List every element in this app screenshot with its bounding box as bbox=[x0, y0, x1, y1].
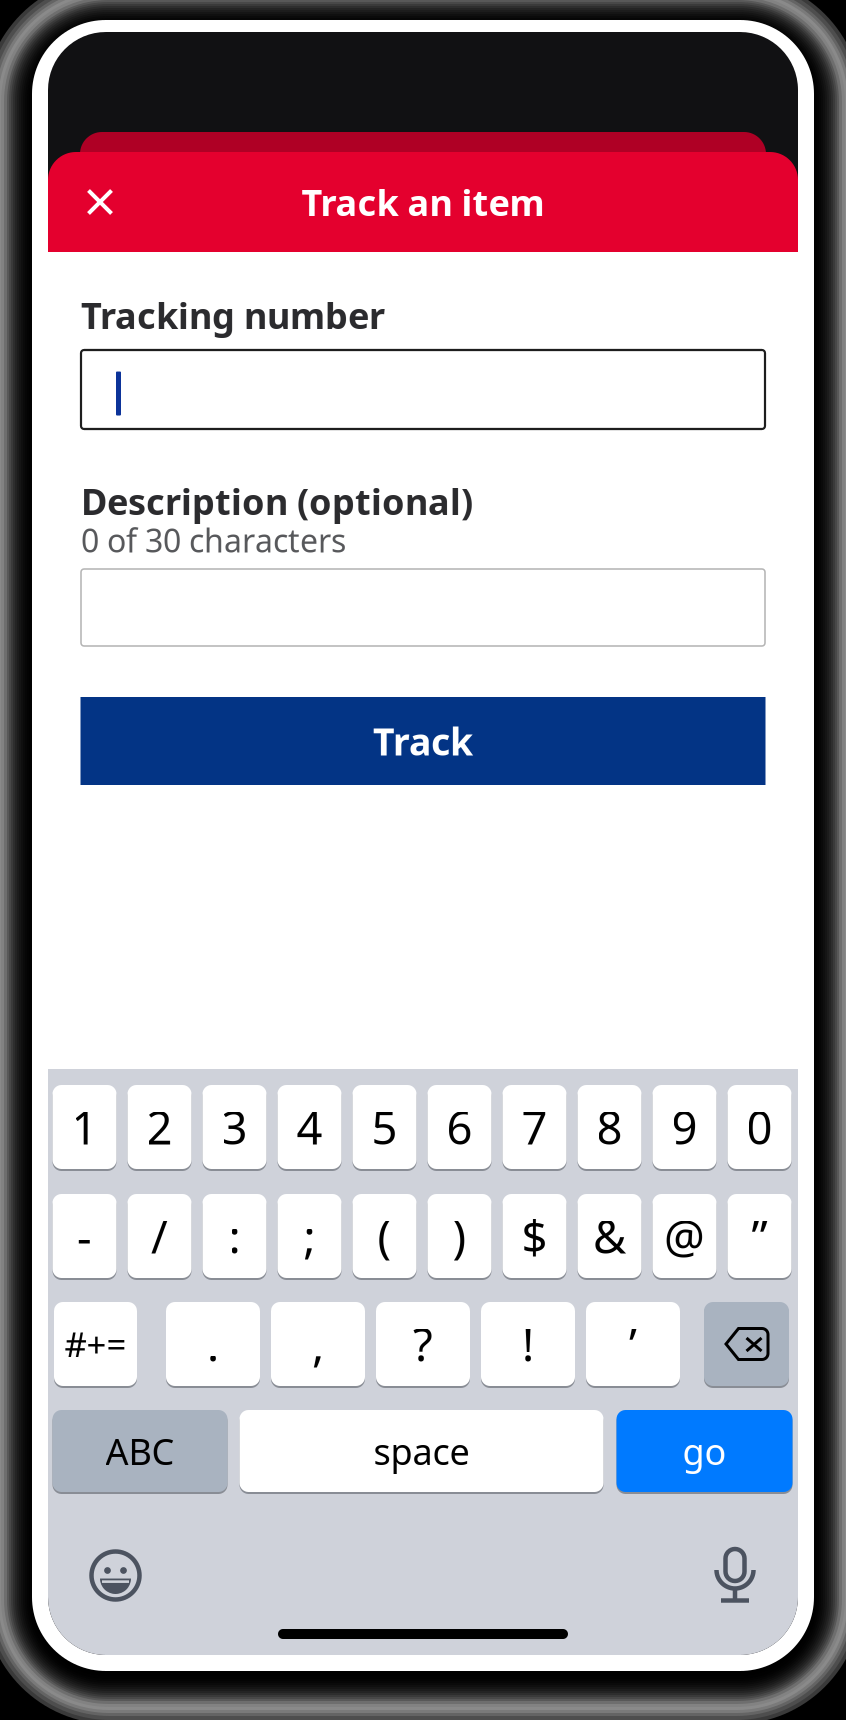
button[interactable]: Emoji bbox=[89, 1549, 142, 1602]
button[interactable]: 5 bbox=[352, 1085, 416, 1169]
staticText: 6 bbox=[446, 1097, 472, 1157]
button[interactable]: 0 bbox=[727, 1085, 791, 1169]
button[interactable]: Tracking number bbox=[81, 350, 765, 429]
button[interactable]: ” bbox=[727, 1194, 791, 1278]
staticText: - bbox=[77, 1206, 92, 1266]
staticText: 0 bbox=[746, 1097, 772, 1157]
button[interactable]: 8 bbox=[577, 1085, 641, 1169]
staticText: ) bbox=[452, 1206, 466, 1266]
staticText: : bbox=[228, 1206, 240, 1266]
staticText: go bbox=[682, 1427, 726, 1475]
staticText: Description (optional) bbox=[81, 477, 473, 525]
button[interactable]: . bbox=[166, 1302, 260, 1386]
staticText: 2 bbox=[146, 1097, 172, 1157]
staticText: ’ bbox=[629, 1314, 637, 1374]
staticText: ( bbox=[377, 1206, 391, 1266]
staticText: 8 bbox=[596, 1097, 622, 1157]
button[interactable]: : bbox=[202, 1194, 266, 1278]
staticText: , bbox=[312, 1314, 324, 1374]
staticText: / bbox=[151, 1206, 168, 1266]
button[interactable]: #+= bbox=[54, 1302, 137, 1386]
button[interactable]: Close bbox=[72, 174, 128, 230]
button[interactable]: space bbox=[239, 1410, 603, 1492]
staticText: 9 bbox=[671, 1097, 697, 1157]
staticText: #+= bbox=[64, 1321, 126, 1367]
staticText: @ bbox=[664, 1206, 705, 1266]
staticText: space bbox=[373, 1427, 469, 1475]
staticText: . bbox=[207, 1314, 219, 1374]
button[interactable]: Description bbox=[81, 569, 765, 646]
button[interactable]: 6 bbox=[427, 1085, 491, 1169]
staticText: 1 bbox=[71, 1097, 97, 1157]
staticText: Tracking number bbox=[81, 291, 385, 339]
button[interactable]: 2 bbox=[127, 1085, 191, 1169]
button[interactable]: 7 bbox=[502, 1085, 566, 1169]
button[interactable]: & bbox=[577, 1194, 641, 1278]
button[interactable]: , bbox=[271, 1302, 365, 1386]
staticText: ABC bbox=[105, 1427, 174, 1475]
button[interactable]: ( bbox=[352, 1194, 416, 1278]
staticText: & bbox=[593, 1206, 626, 1266]
button[interactable]: 9 bbox=[652, 1085, 716, 1169]
button[interactable]: 1 bbox=[52, 1085, 116, 1169]
button[interactable]: $ bbox=[502, 1194, 566, 1278]
staticText: ! bbox=[522, 1314, 534, 1374]
staticText: 0 of 30 characters bbox=[81, 519, 346, 561]
button[interactable]: ABC bbox=[52, 1410, 227, 1492]
staticText: ” bbox=[751, 1206, 767, 1266]
button[interactable]: ) bbox=[427, 1194, 491, 1278]
button[interactable]: Dictation bbox=[713, 1547, 757, 1604]
button[interactable]: / bbox=[127, 1194, 191, 1278]
staticText: 5 bbox=[371, 1097, 397, 1157]
button[interactable]: Delete bbox=[704, 1302, 789, 1386]
button[interactable]: ! bbox=[481, 1302, 575, 1386]
button[interactable]: Track bbox=[80, 697, 765, 785]
button[interactable]: @ bbox=[652, 1194, 716, 1278]
button[interactable]: ? bbox=[376, 1302, 470, 1386]
staticText: 4 bbox=[296, 1097, 322, 1157]
button[interactable]: - bbox=[52, 1194, 116, 1278]
button[interactable]: go bbox=[616, 1410, 792, 1492]
staticText: $ bbox=[521, 1206, 547, 1266]
button[interactable]: ’ bbox=[586, 1302, 680, 1386]
staticText: Track an item bbox=[301, 178, 544, 226]
staticText: ? bbox=[413, 1314, 433, 1374]
staticText: Track bbox=[373, 716, 473, 766]
button[interactable]: 4 bbox=[277, 1085, 341, 1169]
staticText: 3 bbox=[221, 1097, 247, 1157]
button[interactable]: 3 bbox=[202, 1085, 266, 1169]
button[interactable]: ; bbox=[277, 1194, 341, 1278]
staticText: 7 bbox=[521, 1097, 547, 1157]
staticText: ; bbox=[303, 1206, 315, 1266]
